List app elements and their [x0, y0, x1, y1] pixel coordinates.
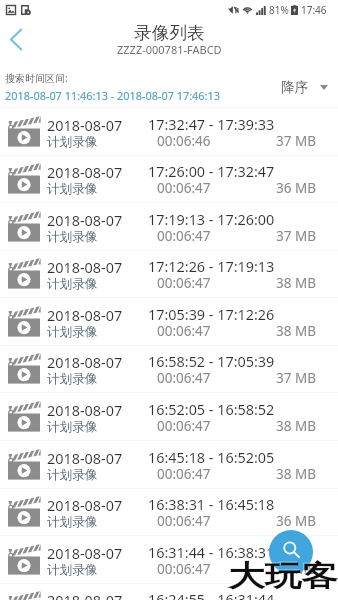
- staticText: 17:26:00 - 17:32:47: [148, 162, 275, 182]
- button[interactable]: 2018-08-07: [0, 345, 338, 393]
- staticText: 16:52:05 - 16:58:52: [148, 400, 275, 420]
- staticText: 00:06:47: [157, 417, 211, 435]
- staticText: 2018-08-07: [47, 353, 123, 373]
- staticText: 计划录像: [47, 229, 98, 245]
- staticText: 计划录像: [47, 514, 98, 530]
- staticText: 计划录像: [47, 419, 98, 435]
- staticText: 计划录像: [47, 467, 98, 483]
- staticText: 38 MB: [276, 417, 316, 435]
- staticText: 36 MB: [276, 179, 316, 197]
- staticText: ZZZZ-000781-FABCD: [117, 42, 222, 57]
- staticText: 38 MB: [276, 274, 316, 292]
- staticText: 2018-08-07 11:46:13 - 2018-08-07 17:46:1…: [5, 88, 220, 103]
- staticText: 00:06:47: [157, 369, 211, 387]
- staticText: 38 MB: [276, 322, 316, 340]
- staticText: 00:06:47: [157, 560, 211, 578]
- button[interactable]: 2018-08-07: [0, 393, 338, 441]
- staticText: 00:06:47: [157, 179, 211, 197]
- staticText: 搜索时间区间:: [5, 71, 68, 85]
- staticText: 37 MB: [276, 227, 316, 245]
- button[interactable]: Back: [2, 25, 30, 53]
- staticText: 37 MB: [276, 132, 316, 150]
- staticText: 2018-08-07: [47, 496, 123, 516]
- staticText: 大玩客: [227, 557, 337, 594]
- staticText: 37 MB: [276, 369, 316, 387]
- staticText: 2018-08-07: [47, 211, 123, 231]
- staticText: 81%: [269, 3, 289, 17]
- staticText: 17:12:26 - 17:19:13: [148, 257, 275, 277]
- staticText: 2018-08-07: [47, 544, 123, 564]
- staticText: 00:06:47: [157, 274, 211, 292]
- button[interactable]: 2018-08-07: [0, 298, 338, 346]
- staticText: 00:06:47: [157, 227, 211, 245]
- staticText: 17:46: [301, 3, 327, 17]
- staticText: 计划录像: [47, 134, 98, 150]
- staticText: 17:32:47 - 17:39:33: [148, 115, 275, 135]
- staticText: 00:06:47: [157, 465, 211, 483]
- staticText: 2018-08-07: [47, 591, 123, 600]
- staticText: 降序: [281, 79, 309, 96]
- staticText: 2018-08-07: [47, 306, 123, 326]
- staticText: 17:05:39 - 17:12:26: [148, 305, 275, 325]
- staticText: 计划录像: [47, 324, 98, 340]
- staticText: 16:58:52 - 17:05:39: [148, 352, 275, 372]
- staticText: 2018-08-07: [47, 163, 123, 183]
- staticText: 16:45:18 - 16:52:05: [148, 448, 275, 468]
- staticText: 17:19:13 - 17:26:00: [148, 210, 275, 230]
- staticText: 16:38:31 - 16:45:18: [148, 495, 275, 515]
- button[interactable]: 2018-08-07: [0, 583, 338, 600]
- button[interactable]: 2018-08-07: [0, 203, 338, 251]
- staticText: 计划录像: [47, 181, 98, 197]
- staticText: 00:06:46: [157, 132, 211, 150]
- button[interactable]: 2018-08-07: [0, 441, 338, 489]
- staticText: 计划录像: [47, 276, 98, 292]
- staticText: 2018-08-07: [47, 449, 123, 469]
- staticText: 2018-08-07: [47, 116, 123, 136]
- staticText: 00:06:47: [157, 512, 211, 530]
- button[interactable]: 2018-08-07: [0, 536, 338, 584]
- staticText: 16:24:55 - 16:31:44: [148, 590, 275, 600]
- button[interactable]: 降序: [281, 79, 328, 96]
- staticText: 38 MB: [276, 560, 316, 578]
- staticText: 大玩客: [228, 558, 338, 595]
- staticText: 计划录像: [47, 562, 98, 578]
- staticText: 16:31:44 - 16:38:31: [148, 543, 275, 563]
- staticText: 38 MB: [276, 465, 316, 483]
- button[interactable]: 2018-08-07: [0, 488, 338, 536]
- staticText: 36 MB: [276, 512, 316, 530]
- button[interactable]: 2018-08-07: [0, 108, 338, 156]
- staticText: 2018-08-07: [47, 258, 123, 278]
- staticText: 2018-08-07: [47, 401, 123, 421]
- button[interactable]: Search: [269, 530, 313, 574]
- staticText: 录像列表: [134, 22, 205, 44]
- staticText: 00:06:47: [157, 322, 211, 340]
- button[interactable]: 2018-08-07: [0, 250, 338, 298]
- staticText: 计划录像: [47, 371, 98, 387]
- button[interactable]: 2018-08-07: [0, 155, 338, 203]
